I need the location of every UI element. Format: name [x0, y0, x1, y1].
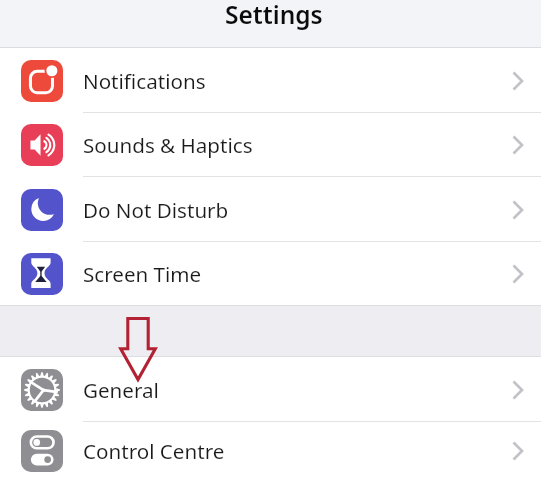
button[interactable]: Control Centre [0, 422, 541, 479]
staticText: Do Not Disturb [83, 196, 506, 224]
button[interactable]: Notifications [0, 48, 541, 113]
staticText: Screen Time [83, 260, 506, 288]
button[interactable]: Screen Time [0, 242, 541, 305]
button[interactable]: Sounds & Haptics [0, 113, 541, 177]
staticText: Control Centre [83, 437, 506, 465]
staticText: Notifications [83, 67, 506, 95]
staticText: Settings [225, 0, 323, 31]
button[interactable]: Do Not Disturb [0, 177, 541, 242]
button[interactable]: General [0, 357, 541, 422]
staticText: General [83, 376, 506, 404]
staticText: Sounds & Haptics [83, 131, 506, 159]
